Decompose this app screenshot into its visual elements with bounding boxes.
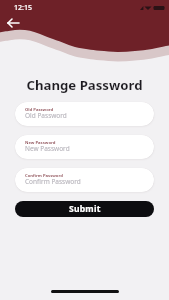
staticText: Change Password xyxy=(0,76,169,94)
staticText: Confirm Password xyxy=(25,173,63,179)
button[interactable]: Confirm Password xyxy=(15,168,154,192)
staticText: Old Password xyxy=(25,111,67,120)
staticText: New Password xyxy=(25,140,56,146)
button[interactable]: Old Password xyxy=(15,102,154,126)
staticText: 12:15 xyxy=(14,3,32,13)
button[interactable]: Submit xyxy=(15,201,154,217)
staticText: New Password xyxy=(25,144,70,153)
button[interactable]: Back xyxy=(2,12,24,34)
staticText: Submit xyxy=(69,203,101,215)
staticText: Old Password xyxy=(25,107,54,113)
button[interactable]: New Password xyxy=(15,135,154,159)
staticText: Confirm Password xyxy=(25,177,81,186)
